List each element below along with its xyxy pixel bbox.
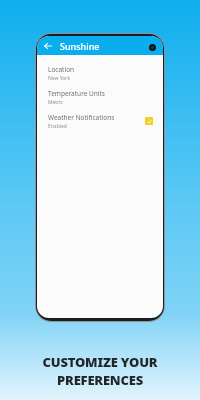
staticText: Metric (48, 99, 63, 106)
staticText: Weather Notifications (48, 113, 115, 122)
staticText: Sunshine (60, 40, 100, 52)
button[interactable]: Location (37, 61, 163, 85)
button[interactable]: Weather Notifications (37, 109, 163, 133)
button[interactable]: Back (42, 40, 54, 52)
staticText: New York (48, 75, 71, 82)
staticText: CUSTOMIZE YOUR PREFERENCES (0, 353, 200, 389)
button[interactable]: Weather Notifications toggle (142, 114, 156, 128)
staticText: Enabled (48, 123, 67, 130)
staticText: Location (48, 65, 75, 74)
button[interactable]: Temperature Units (37, 85, 163, 109)
staticText: Temperature Units (48, 89, 105, 98)
